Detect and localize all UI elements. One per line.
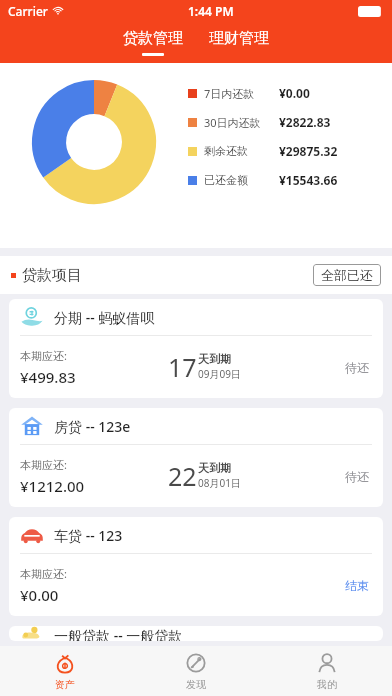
- staticText: 全部已还: [321, 267, 373, 283]
- staticText: 本期应还:: [20, 566, 67, 581]
- staticText: ¥499.83: [20, 367, 76, 387]
- staticText: ¥0.00: [279, 85, 310, 101]
- staticText: ¥29875.32: [279, 143, 338, 159]
- staticText: 已还金额: [204, 173, 248, 187]
- button[interactable]: 房贷 -- 123e: [9, 408, 383, 507]
- button[interactable]: 结束: [345, 578, 369, 593]
- staticText: 我的: [317, 678, 337, 691]
- staticText: 一般贷款 -- 一般贷款: [54, 626, 183, 641]
- staticText: 天到期: [198, 352, 231, 366]
- button[interactable]: 发现: [130, 646, 261, 696]
- staticText: ¥0.00: [20, 585, 59, 605]
- staticText: 22: [168, 459, 197, 493]
- button[interactable]: 贷款管理: [117, 29, 189, 56]
- staticText: 房贷 -- 123e: [54, 417, 131, 436]
- button[interactable]: 资产: [0, 646, 130, 696]
- staticText: ¥1212.00: [20, 476, 85, 496]
- staticText: 理财管理: [209, 29, 269, 48]
- staticText: 17: [168, 350, 197, 384]
- button[interactable]: 分期 -- 蚂蚁借呗: [9, 299, 383, 398]
- staticText: Carrier: [8, 3, 48, 19]
- staticText: 30日内还款: [204, 115, 261, 130]
- button[interactable]: 我的: [261, 646, 392, 696]
- staticText: 本期应还:: [20, 348, 67, 363]
- staticText: ¥15543.66: [279, 172, 338, 188]
- staticText: 资产: [55, 678, 75, 691]
- staticText: 09月09日: [198, 367, 241, 381]
- staticText: 1:44 PM: [188, 3, 234, 19]
- button[interactable]: 车贷 -- 123: [9, 517, 383, 616]
- staticText: 待还: [345, 360, 369, 375]
- staticText: 结束: [345, 578, 369, 593]
- staticText: 7日内还款: [204, 86, 255, 101]
- button[interactable]: 一般贷款 -- 一般贷款: [9, 626, 383, 641]
- staticText: 待还: [345, 469, 369, 484]
- button[interactable]: 理财管理: [203, 29, 275, 56]
- button[interactable]: 全部已还: [313, 264, 381, 286]
- staticText: 贷款项目: [22, 266, 82, 285]
- staticText: 08月01日: [198, 476, 241, 490]
- staticText: 贷款管理: [123, 29, 183, 48]
- staticText: 本期应还:: [20, 457, 67, 472]
- staticText: 发现: [186, 678, 206, 691]
- staticText: 天到期: [198, 461, 231, 475]
- staticText: 车贷 -- 123: [54, 526, 123, 545]
- staticText: 分期 -- 蚂蚁借呗: [54, 308, 155, 327]
- staticText: ¥2822.83: [279, 114, 331, 130]
- staticText: 剩余还款: [204, 144, 248, 158]
- button[interactable]: 待还: [345, 360, 369, 375]
- button[interactable]: 待还: [345, 469, 369, 484]
